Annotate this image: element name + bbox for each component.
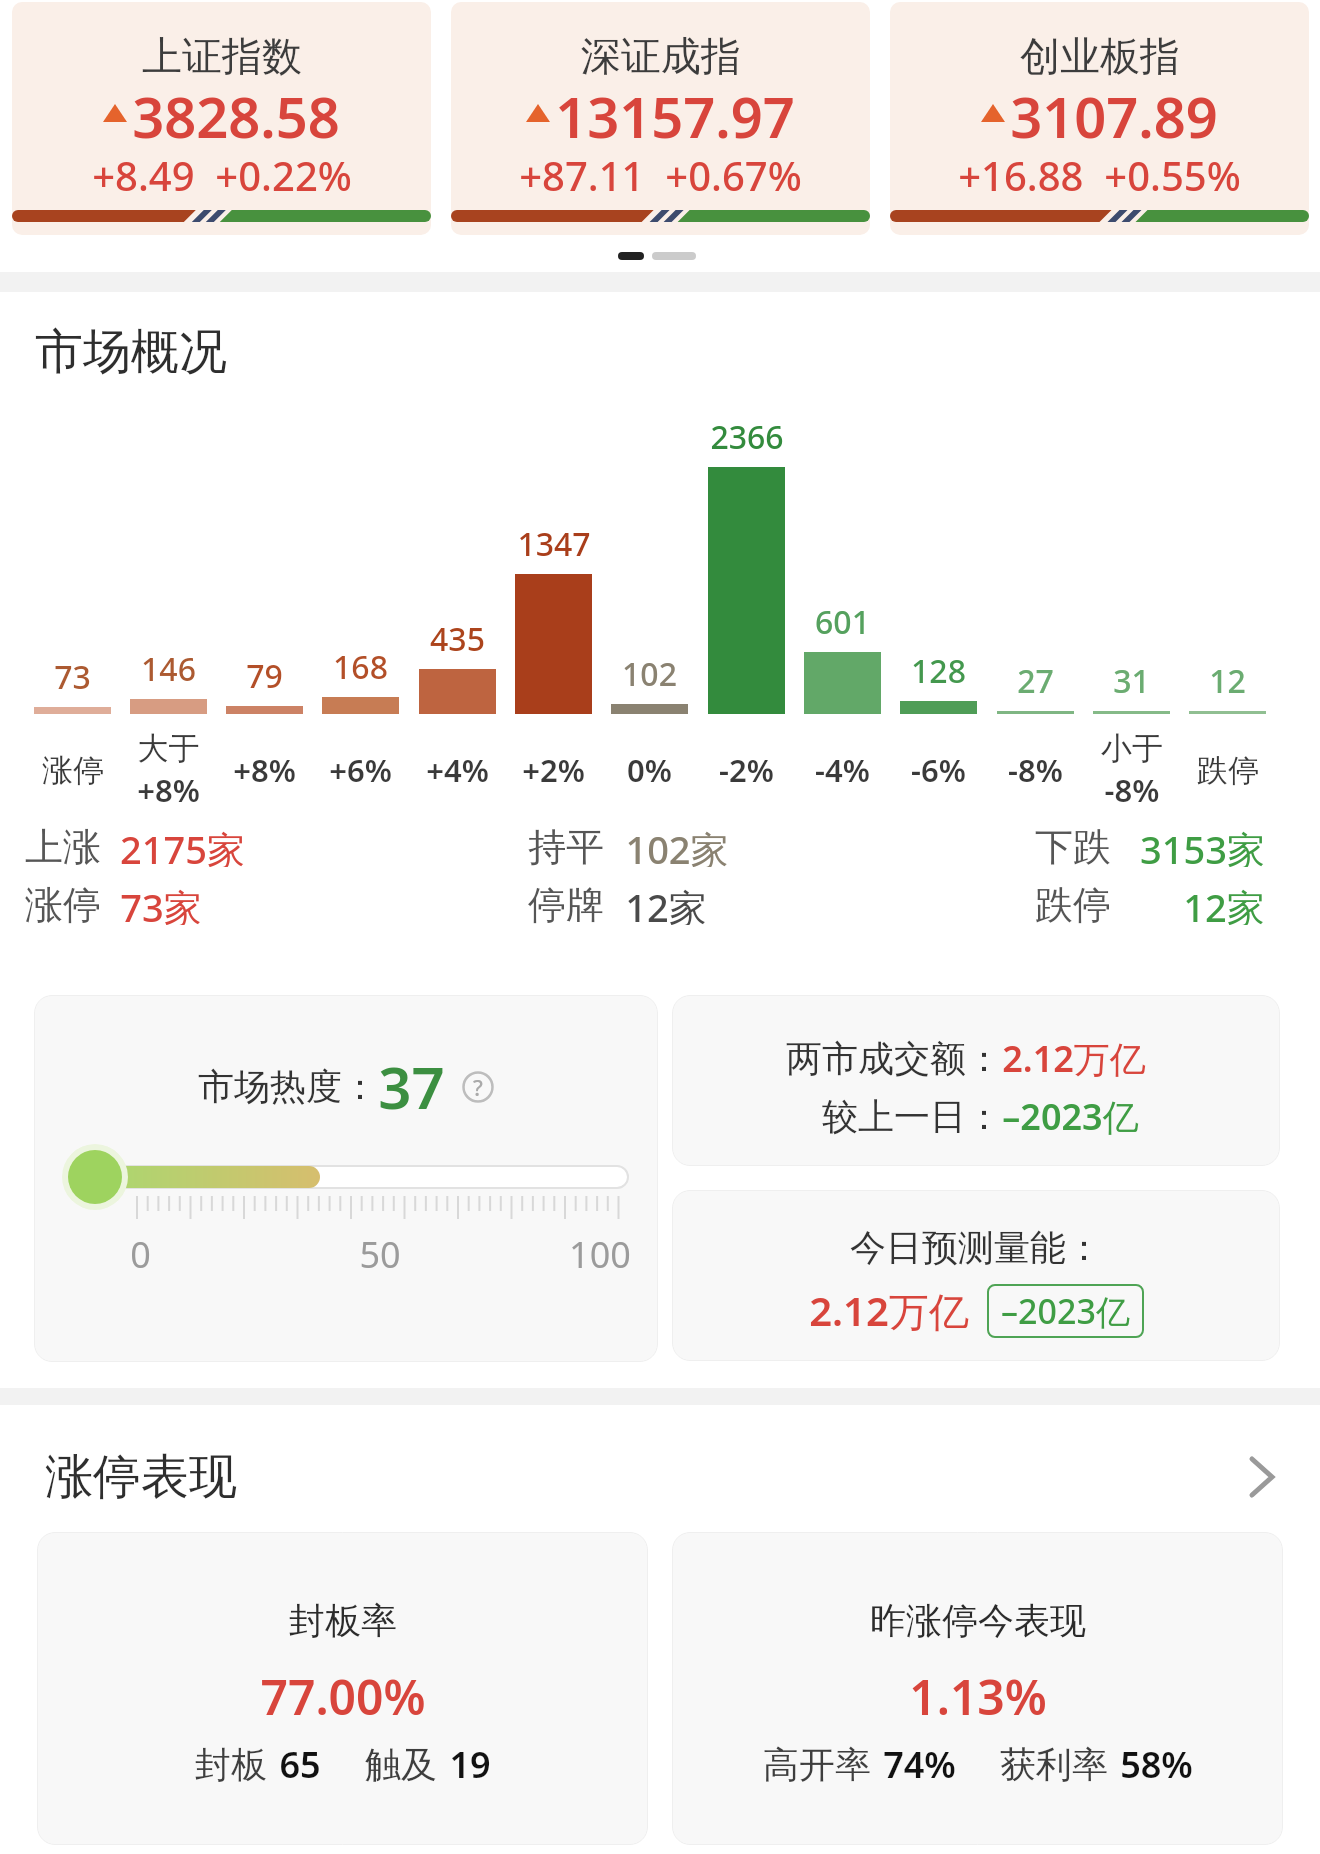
button[interactable]: 昨涨停今表现 xyxy=(672,1532,1283,1845)
staticText: 跌停 xyxy=(1035,881,1111,925)
staticText: 高开率 xyxy=(763,1742,871,1787)
staticText: 获利率 xyxy=(1000,1742,1108,1787)
staticText: 12 xyxy=(1209,659,1246,703)
staticText: 37 xyxy=(378,1047,445,1126)
staticText: 19 xyxy=(449,1740,491,1789)
staticText: –2023亿 xyxy=(1002,1092,1139,1141)
staticText: 1347 xyxy=(517,522,591,566)
staticText: +8.49 +0.22% xyxy=(92,148,352,202)
staticText: +4% xyxy=(426,749,489,791)
staticText: 102 xyxy=(622,652,677,696)
staticText: 0% xyxy=(627,749,672,791)
staticText: 128 xyxy=(911,649,966,693)
staticText: 73家 xyxy=(120,881,202,925)
staticText: 涨停 xyxy=(42,751,104,790)
staticText: 100 xyxy=(569,1230,631,1279)
staticText: 触及 xyxy=(365,1742,437,1787)
staticText: -2% xyxy=(719,749,774,791)
staticText: 涨停 xyxy=(25,881,101,925)
staticText: 3107.89 xyxy=(1010,78,1218,148)
staticText: 持平 xyxy=(528,823,604,867)
staticText: 79 xyxy=(246,654,283,698)
staticText: 跌停 xyxy=(1197,751,1259,790)
staticText: -4% xyxy=(815,749,870,791)
button[interactable]: 深证成指 xyxy=(451,2,870,235)
staticText: 146 xyxy=(141,647,196,691)
staticText: ? xyxy=(473,1072,483,1102)
staticText: +8% xyxy=(233,749,296,791)
button[interactable]: 涨停表现 xyxy=(0,1445,1320,1509)
staticText: 小于 -8% xyxy=(1101,729,1163,811)
staticText: 601 xyxy=(815,600,870,644)
staticText: 深证成指 xyxy=(581,31,741,81)
staticText: 27 xyxy=(1017,659,1054,703)
staticText: 昨涨停今表现 xyxy=(870,1598,1086,1643)
staticText: 13157.97 xyxy=(555,78,795,148)
staticText: 今日预测量能： xyxy=(850,1225,1102,1270)
staticText: 2.12万亿 xyxy=(1002,1034,1146,1083)
staticText: 435 xyxy=(430,617,485,661)
staticText: +16.88 +0.55% xyxy=(958,148,1241,202)
staticText: 2366 xyxy=(710,415,784,459)
staticText: 73 xyxy=(54,655,91,699)
staticText: 大于 +8% xyxy=(137,729,200,811)
staticText: 77.00% xyxy=(260,1664,426,1720)
staticText: 12家 xyxy=(1183,881,1265,925)
staticText: 下跌 xyxy=(1035,823,1111,867)
staticText: -6% xyxy=(911,749,966,791)
staticText: 较上一日： xyxy=(822,1094,1002,1139)
staticText: 58% xyxy=(1120,1740,1193,1789)
staticText: 50 xyxy=(359,1230,401,1279)
staticText: 市场热度： xyxy=(198,1064,378,1109)
staticText: –2023亿 xyxy=(1001,1288,1130,1334)
staticText: 12家 xyxy=(625,881,707,925)
staticText: 上证指数 xyxy=(142,31,302,81)
staticText: -8% xyxy=(1008,749,1063,791)
button[interactable]: 上证指数 xyxy=(12,2,431,235)
staticText: 2.12万亿 xyxy=(809,1283,969,1338)
staticText: 2175家 xyxy=(120,823,245,867)
staticText: 74% xyxy=(883,1740,956,1789)
button[interactable]: 市场热度： xyxy=(34,995,658,1362)
staticText: 上涨 xyxy=(25,823,101,867)
staticText: 102家 xyxy=(625,823,729,867)
staticText: 3153家 xyxy=(1140,823,1265,867)
staticText: 停牌 xyxy=(528,881,604,925)
staticText: 0 xyxy=(130,1230,151,1279)
staticText: 封板 xyxy=(195,1742,267,1787)
staticText: 1.13% xyxy=(909,1664,1047,1720)
staticText: 168 xyxy=(333,645,388,689)
staticText: 封板率 xyxy=(289,1598,397,1643)
staticText: 3828.58 xyxy=(132,78,340,148)
staticText: 涨停表现 xyxy=(45,1447,237,1507)
staticText: 创业板指 xyxy=(1020,31,1180,81)
staticText: 市场概况 xyxy=(35,322,227,378)
staticText: 两市成交额： xyxy=(786,1036,1002,1081)
button[interactable]: 创业板指 xyxy=(890,2,1309,235)
staticText: +87.11 +0.67% xyxy=(519,148,802,202)
staticText: +2% xyxy=(522,749,585,791)
staticText: 31 xyxy=(1113,659,1150,703)
staticText: +6% xyxy=(329,749,392,791)
button[interactable]: 封板率 xyxy=(37,1532,648,1845)
staticText: 65 xyxy=(279,1740,321,1789)
